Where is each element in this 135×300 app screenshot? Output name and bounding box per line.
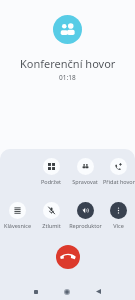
button[interactable]: Ztlumit bbox=[34, 202, 68, 229]
staticText: 01:18 bbox=[59, 73, 76, 82]
button[interactable]: Spravovat bbox=[68, 158, 102, 185]
button[interactable]: Home bbox=[60, 285, 73, 298]
button[interactable]: Podržet bbox=[34, 158, 68, 185]
staticText: Více bbox=[113, 222, 124, 229]
button[interactable]: Více bbox=[102, 202, 135, 229]
staticText: Přidat hovor bbox=[103, 178, 135, 185]
staticText: Podržet bbox=[41, 178, 61, 185]
button[interactable]: Přidat hovor bbox=[102, 158, 135, 185]
staticText: Konferenční hovor bbox=[20, 56, 116, 71]
staticText: Klávesnice bbox=[4, 222, 31, 229]
staticText: Ztlumit bbox=[42, 222, 61, 229]
button[interactable]: Klávesnice bbox=[0, 202, 34, 229]
button[interactable]: Recents bbox=[29, 285, 42, 298]
button[interactable]: End call bbox=[56, 245, 80, 269]
staticText: Reproduktor bbox=[69, 222, 102, 229]
button[interactable]: Back bbox=[92, 285, 105, 298]
staticText: Spravovat bbox=[72, 178, 98, 185]
button[interactable]: Reproduktor bbox=[68, 202, 102, 229]
